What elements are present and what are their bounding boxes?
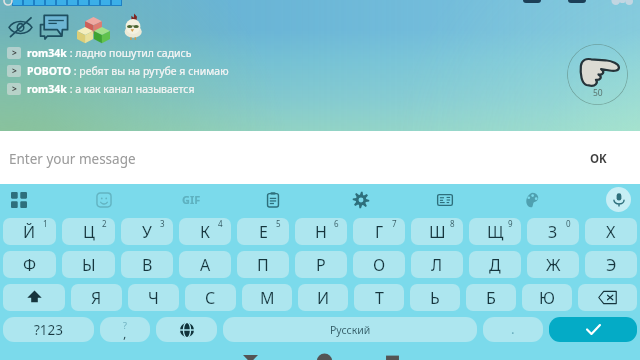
button[interactable]: И: [298, 284, 348, 311]
staticText: 3: [160, 218, 165, 229]
staticText: И: [317, 287, 330, 309]
button[interactable]: Home: [300, 344, 348, 360]
button[interactable]: Shift: [3, 284, 65, 311]
staticText: К: [200, 221, 211, 243]
button[interactable]: П: [237, 251, 289, 278]
staticText: ?123: [34, 321, 64, 339]
button[interactable]: Ш: [411, 218, 463, 245]
staticText: 9: [508, 218, 513, 229]
button[interactable]: ?: [100, 317, 150, 342]
button[interactable]: Б: [466, 284, 516, 311]
staticText: 5: [276, 218, 281, 229]
button[interactable]: Ы: [62, 251, 115, 278]
staticText: .: [511, 320, 515, 338]
button[interactable]: Chat: [40, 15, 68, 39]
staticText: rom34k: [27, 82, 67, 96]
button[interactable]: О: [353, 251, 405, 278]
staticText: Э: [606, 254, 617, 276]
staticText: 8: [450, 218, 455, 229]
staticText: 2: [102, 218, 107, 229]
button[interactable]: М: [242, 284, 292, 311]
button[interactable]: Enter: [549, 317, 637, 342]
button[interactable]: Й: [3, 218, 56, 245]
button[interactable]: Т: [354, 284, 404, 311]
staticText: Ь: [430, 287, 440, 309]
button[interactable]: Г: [353, 218, 405, 245]
button[interactable]: Р: [295, 251, 347, 278]
button[interactable]: Backspace: [578, 284, 637, 311]
staticText: Ц: [83, 221, 95, 243]
staticText: 1: [43, 218, 48, 229]
staticText: 50: [593, 87, 603, 99]
staticText: 6: [334, 218, 339, 229]
button[interactable]: Pet: [123, 13, 143, 40]
staticText: Х: [606, 221, 616, 243]
button[interactable]: В: [121, 251, 173, 278]
staticText: Л: [431, 254, 443, 276]
staticText: З: [548, 221, 558, 243]
button[interactable]: translate: [426, 184, 464, 215]
staticText: С: [205, 287, 216, 309]
staticText: OK: [590, 151, 607, 167]
button[interactable]: grid: [0, 184, 38, 215]
button[interactable]: theme: [513, 184, 551, 215]
button[interactable]: А: [179, 251, 231, 278]
staticText: POBOTO: [27, 64, 71, 78]
staticText: : а как канал называется: [67, 82, 195, 96]
staticText: В: [142, 254, 153, 276]
staticText: У: [142, 221, 152, 243]
staticText: : ладно пошутил садись: [67, 46, 192, 60]
staticText: Р: [316, 254, 326, 276]
staticText: 4: [218, 218, 223, 229]
button[interactable]: gif: [172, 184, 210, 215]
button[interactable]: Русский: [223, 317, 477, 342]
staticText: ,: [123, 324, 127, 342]
staticText: Ж: [546, 254, 561, 276]
staticText: Б: [486, 287, 496, 309]
button[interactable]: Recents: [368, 344, 416, 360]
button[interactable]: Hand tool, 50: [567, 44, 628, 105]
button[interactable]: Change language: [156, 317, 217, 342]
staticText: >: [12, 83, 17, 95]
button[interactable]: Ф: [3, 251, 56, 278]
staticText: Ш: [429, 221, 446, 243]
staticText: М: [260, 287, 275, 309]
button[interactable]: С: [185, 284, 236, 311]
button[interactable]: Э: [585, 251, 637, 278]
staticText: >: [12, 47, 17, 59]
button[interactable]: Ж: [527, 251, 579, 278]
staticText: Enter your message: [9, 150, 136, 168]
button[interactable]: Д: [469, 251, 521, 278]
button[interactable]: Back: [226, 344, 274, 360]
button[interactable]: Ь: [410, 284, 460, 311]
staticText: Н: [315, 221, 327, 243]
button[interactable]: Н: [295, 218, 347, 245]
staticText: 7: [392, 218, 397, 229]
button[interactable]: К: [179, 218, 231, 245]
button[interactable]: .: [483, 317, 543, 342]
staticText: П: [257, 254, 269, 276]
button[interactable]: sticker: [85, 184, 123, 215]
staticText: : ребят вы на рутубе я снимаю: [71, 64, 229, 78]
button[interactable]: Е: [237, 218, 289, 245]
button[interactable]: Hide chat: [8, 17, 33, 37]
staticText: Ф: [23, 254, 37, 276]
button[interactable]: Inventory: [77, 14, 110, 41]
button[interactable]: OK: [564, 131, 640, 184]
button[interactable]: Щ: [469, 218, 521, 245]
button[interactable]: Х: [585, 218, 637, 245]
button[interactable]: З: [527, 218, 579, 245]
staticText: GIF: [182, 192, 201, 207]
button[interactable]: Л: [411, 251, 463, 278]
button[interactable]: settings: [342, 184, 380, 215]
button[interactable]: Ю: [522, 284, 572, 311]
staticText: Русский: [330, 323, 371, 337]
button[interactable]: Я: [71, 284, 122, 311]
button[interactable]: Ц: [62, 218, 115, 245]
button[interactable]: У: [121, 218, 173, 245]
button[interactable]: ?123: [3, 317, 94, 342]
staticText: Ы: [82, 254, 96, 276]
button[interactable]: Ч: [128, 284, 179, 311]
button[interactable]: clipboard: [254, 184, 292, 215]
button[interactable]: mic: [599, 184, 637, 215]
